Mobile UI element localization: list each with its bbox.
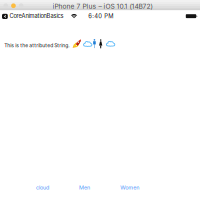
button[interactable]: Women [120, 184, 139, 191]
button[interactable]: Men [79, 184, 90, 191]
staticText: iPhone 7 Plus – iOS 10.1 (14B72) [53, 2, 153, 10]
button[interactable]: cloud [36, 184, 49, 191]
staticText: Men [79, 184, 90, 191]
staticText: This is the attributed String. [4, 42, 69, 48]
staticText: 6:40 PM [88, 12, 113, 20]
staticText: cloud [36, 184, 49, 191]
staticText: CoreAnimationBasics [10, 13, 64, 19]
staticText: Women [120, 184, 139, 191]
